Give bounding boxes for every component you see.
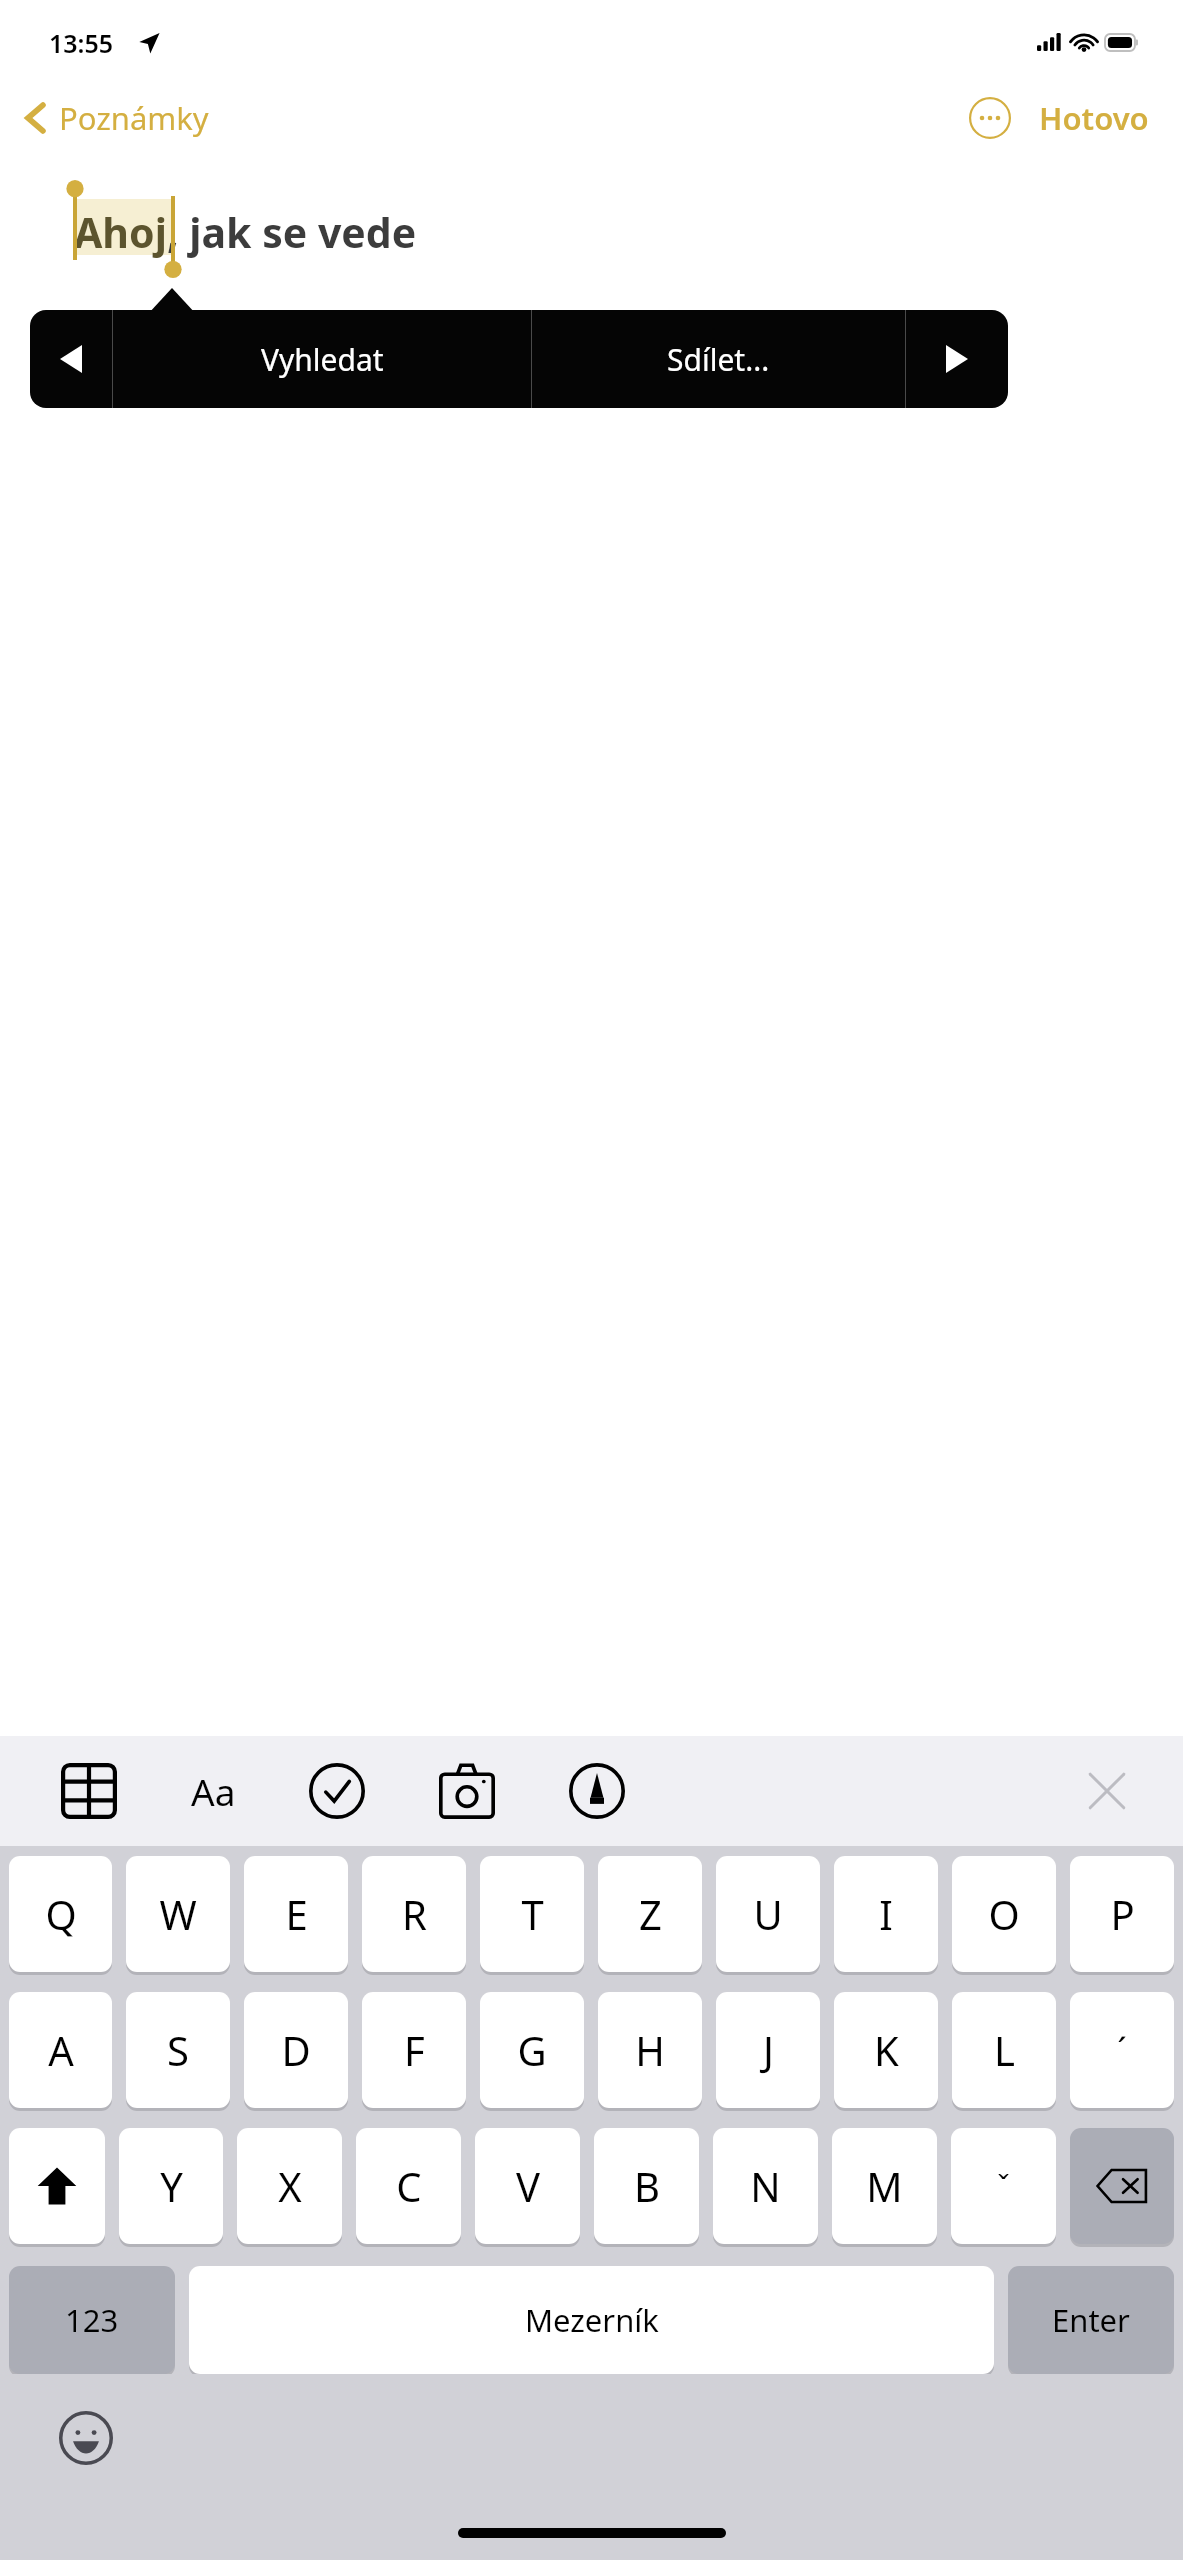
button[interactable] [1070,2128,1174,2244]
staticText: O [988,1887,1020,1941]
other: Y [119,2128,223,2244]
button[interactable]: T [480,1856,584,1972]
button[interactable]: E [244,1856,348,1972]
other: L [952,1992,1056,2108]
staticText: Aa [191,1766,236,1816]
button[interactable]: Poznámky [0,89,221,147]
button[interactable]: C [356,2128,461,2244]
button[interactable]: M [832,2128,937,2244]
button[interactable]: Close keyboard [1069,1753,1145,1829]
staticText: F [404,2023,425,2077]
button[interactable]: Hotovo [1033,87,1155,149]
staticText: W [159,1887,197,1941]
staticText: R [402,1887,427,1941]
button[interactable]: Format [170,1748,256,1834]
staticText: G [517,2023,547,2077]
other: W [126,1856,230,1972]
button[interactable]: Z [598,1856,702,1972]
other: H [598,1992,702,2108]
button[interactable]: J [716,1992,820,2108]
button[interactable]: Y [119,2128,223,2244]
button[interactable]: A [9,1992,112,2108]
button[interactable]: D [244,1992,348,2108]
button[interactable]: O [952,1856,1056,1972]
other: Z [598,1856,702,1972]
other: X [237,2128,342,2244]
button[interactable]: V [475,2128,580,2244]
other: C [356,2128,461,2244]
button[interactable]: W [126,1856,230,1972]
staticText: B [634,2159,660,2213]
other: K [834,1992,938,2108]
staticText: 123 [65,2299,119,2341]
button[interactable]: P [1070,1856,1174,1972]
staticText: T [521,1887,544,1941]
staticText: ´ [1117,2027,1127,2073]
button[interactable]: Camera [424,1748,510,1834]
button[interactable]: X [237,2128,342,2244]
button[interactable]: Mezerník [189,2266,994,2374]
button[interactable]: Previous [30,310,112,408]
button[interactable]: U [716,1856,820,1972]
staticText: X [278,2159,302,2213]
other: B [594,2128,699,2244]
button[interactable]: Q [9,1856,112,1972]
button[interactable]: Enter [1008,2266,1174,2374]
staticText: D [281,2023,311,2077]
button[interactable]: Sdílet... [532,310,905,408]
button[interactable]: B [594,2128,699,2244]
staticText: A [48,2023,74,2077]
button[interactable]: 123 [9,2266,175,2374]
button[interactable]: H [598,1992,702,2108]
staticText: U [753,1887,783,1941]
button[interactable]: Checklist [294,1748,380,1834]
other: V [475,2128,580,2244]
other: Space [189,2266,994,2374]
button[interactable]: ˇ [951,2128,1056,2244]
staticText: Sdílet... [667,339,770,380]
button[interactable] [9,2128,105,2244]
other: D [244,1992,348,2108]
button[interactable]: S [126,1992,230,2108]
button[interactable]: Next [906,310,1008,408]
button[interactable]: Vyhledat [113,310,531,408]
button[interactable]: F [362,1992,466,2108]
other: ˇ [951,2128,1056,2244]
button[interactable]: ´ [1070,1992,1174,2108]
staticText: K [874,2023,899,2077]
other: S [126,1992,230,2108]
button[interactable]: G [480,1992,584,2108]
staticText: 13:55 [49,26,114,60]
staticText: L [994,2023,1015,2077]
button[interactable]: K [834,1992,938,2108]
staticText: Hotovo [1039,97,1149,139]
other: Backspace [1070,2128,1174,2244]
staticText: Vyhledat [261,339,384,380]
other: F [362,1992,466,2108]
button[interactable]: N [713,2128,818,2244]
other: I [834,1856,938,1972]
other: Q [9,1856,112,1972]
button[interactable]: I [834,1856,938,1972]
staticText: Y [160,2159,183,2213]
staticText: S [167,2023,189,2077]
button[interactable]: L [952,1992,1056,2108]
button[interactable]: More options [959,87,1021,149]
staticText: Z [639,1887,662,1941]
staticText: E [285,1887,308,1941]
staticText: ˇ [997,2166,1010,2207]
staticText: M [866,2159,903,2213]
other: G [480,1992,584,2108]
staticText: V [516,2159,540,2213]
button[interactable]: Table [46,1748,132,1834]
button[interactable]: Markup [554,1748,640,1834]
staticText: P [1110,1887,1135,1941]
staticText: Poznámky [59,97,209,139]
staticText: Enter [1052,2299,1130,2341]
other: U [716,1856,820,1972]
other: J [716,1992,820,2108]
button[interactable]: R [362,1856,466,1972]
other: T [480,1856,584,1972]
button[interactable]: Emoji [44,2396,128,2480]
other: Shift [9,2128,105,2244]
